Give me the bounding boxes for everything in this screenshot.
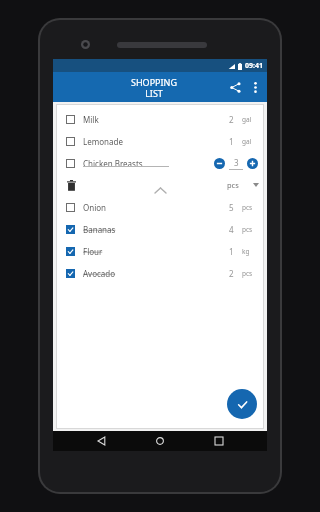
staticText: 4 bbox=[229, 224, 234, 235]
button[interactable]: Bananas bbox=[56, 218, 264, 240]
button[interactable]: Done bbox=[227, 389, 257, 419]
staticText: 5 bbox=[229, 202, 234, 213]
staticText: pcs bbox=[242, 225, 253, 234]
staticText: Chicken Breasts bbox=[83, 158, 143, 169]
button[interactable]: Avocado bbox=[56, 262, 264, 284]
staticText: gal bbox=[242, 115, 252, 124]
staticText: SHOPPING LIST bbox=[131, 76, 177, 99]
staticText: Bananas bbox=[83, 224, 116, 235]
button[interactable]: More options bbox=[246, 78, 264, 96]
staticText: pcs bbox=[227, 180, 239, 190]
button[interactable]: pcs bbox=[227, 180, 259, 190]
staticText: 2 bbox=[229, 268, 234, 279]
staticText: pcs bbox=[242, 269, 253, 278]
button[interactable]: Recents bbox=[209, 431, 229, 451]
button[interactable]: Home bbox=[150, 431, 170, 451]
staticText: gal bbox=[242, 137, 252, 146]
button[interactable]: Back bbox=[92, 431, 112, 451]
staticText: Flour bbox=[83, 246, 103, 257]
staticText: 1 bbox=[229, 136, 234, 147]
button[interactable]: Onion bbox=[56, 196, 264, 218]
staticText: kg bbox=[242, 247, 250, 256]
staticText: pcs bbox=[242, 203, 253, 212]
staticText: Lemonade bbox=[83, 136, 123, 147]
button[interactable]: Lemonade bbox=[56, 130, 264, 152]
staticText: 3 bbox=[234, 157, 239, 168]
button[interactable]: Flour bbox=[56, 240, 264, 262]
staticText: 2 bbox=[229, 114, 234, 125]
button[interactable]: Decrease bbox=[214, 158, 225, 169]
staticText: Milk bbox=[83, 114, 99, 125]
staticText: Onion bbox=[83, 202, 107, 213]
staticText: Avocado bbox=[83, 268, 116, 279]
button[interactable]: Chicken Breasts bbox=[56, 152, 264, 174]
button[interactable]: Collapse bbox=[151, 181, 169, 199]
staticText: 1 bbox=[229, 246, 234, 257]
button[interactable]: Milk bbox=[56, 108, 264, 130]
button[interactable]: Delete bbox=[63, 177, 79, 193]
button[interactable]: Increase bbox=[247, 158, 258, 169]
staticText: 09:41 bbox=[245, 61, 263, 71]
button[interactable]: Share bbox=[224, 76, 246, 98]
